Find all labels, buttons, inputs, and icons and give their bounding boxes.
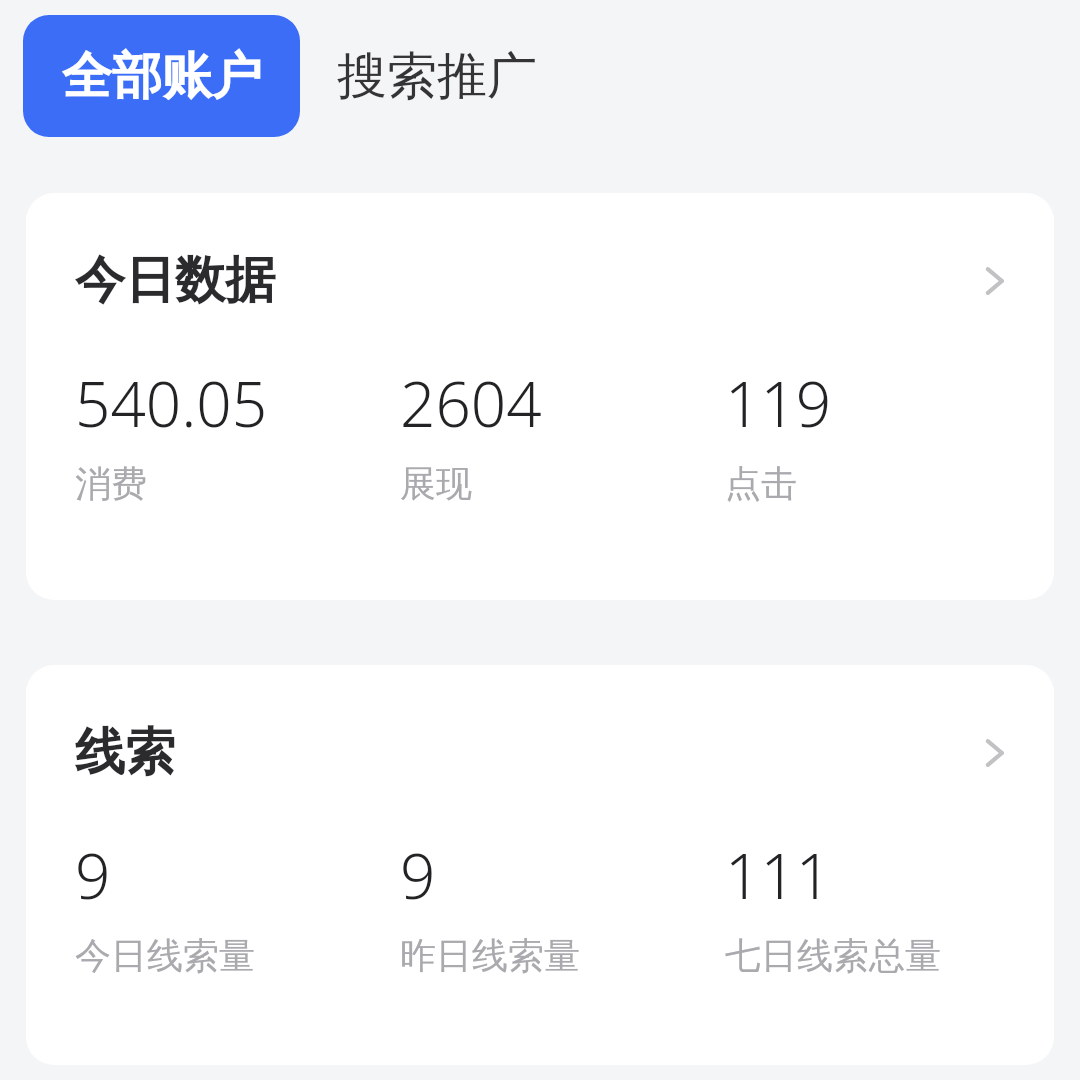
staticText: 线索 — [75, 721, 175, 784]
staticText: 540.05 — [75, 361, 268, 445]
other: 查看详情 — [972, 259, 1016, 303]
button[interactable]: 搜索推广 — [300, 15, 574, 137]
staticText: 今日数据 — [75, 249, 275, 312]
staticText: 111 — [725, 833, 832, 917]
staticText: 9 — [400, 833, 436, 917]
staticText: 消费 — [75, 461, 147, 506]
staticText: 展现 — [400, 461, 472, 506]
other: 查看详情 — [972, 731, 1016, 775]
button[interactable]: 全部账户 — [23, 15, 300, 137]
button[interactable]: 今日数据 — [26, 193, 1054, 600]
staticText: 搜索推广 — [337, 45, 537, 108]
staticText: 昨日线索量 — [400, 933, 580, 978]
staticText: 点击 — [725, 461, 797, 506]
button[interactable]: 线索 — [26, 665, 1054, 1065]
staticText: 七日线索总量 — [725, 933, 941, 978]
staticText: 全部账户 — [62, 45, 262, 108]
staticText: 2604 — [400, 361, 542, 445]
staticText: 9 — [75, 833, 111, 917]
staticText: 今日线索量 — [75, 933, 255, 978]
staticText: 119 — [725, 361, 832, 445]
